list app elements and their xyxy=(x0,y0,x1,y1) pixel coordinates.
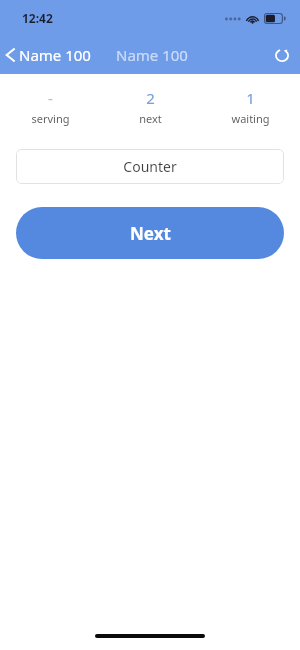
button[interactable]: Counter xyxy=(16,149,284,184)
staticText: serving xyxy=(31,111,70,126)
button[interactable]: 2 xyxy=(100,88,200,126)
staticText: Name 100 xyxy=(19,45,91,65)
staticText: - xyxy=(48,88,53,108)
button[interactable]: - xyxy=(0,88,100,126)
staticText: 2 xyxy=(146,88,155,108)
button[interactable]: 1 xyxy=(200,88,300,126)
button[interactable]: Next xyxy=(16,207,284,259)
button[interactable]: Refresh xyxy=(264,41,300,69)
staticText: Next xyxy=(130,222,171,245)
staticText: 1 xyxy=(246,88,255,108)
staticText: waiting xyxy=(231,111,270,126)
button[interactable]: Name 100 xyxy=(0,41,99,69)
staticText: Name 100 xyxy=(116,45,188,65)
staticText: next xyxy=(139,111,162,126)
staticText: Counter xyxy=(123,157,177,176)
staticText: 12:42 xyxy=(22,10,53,26)
